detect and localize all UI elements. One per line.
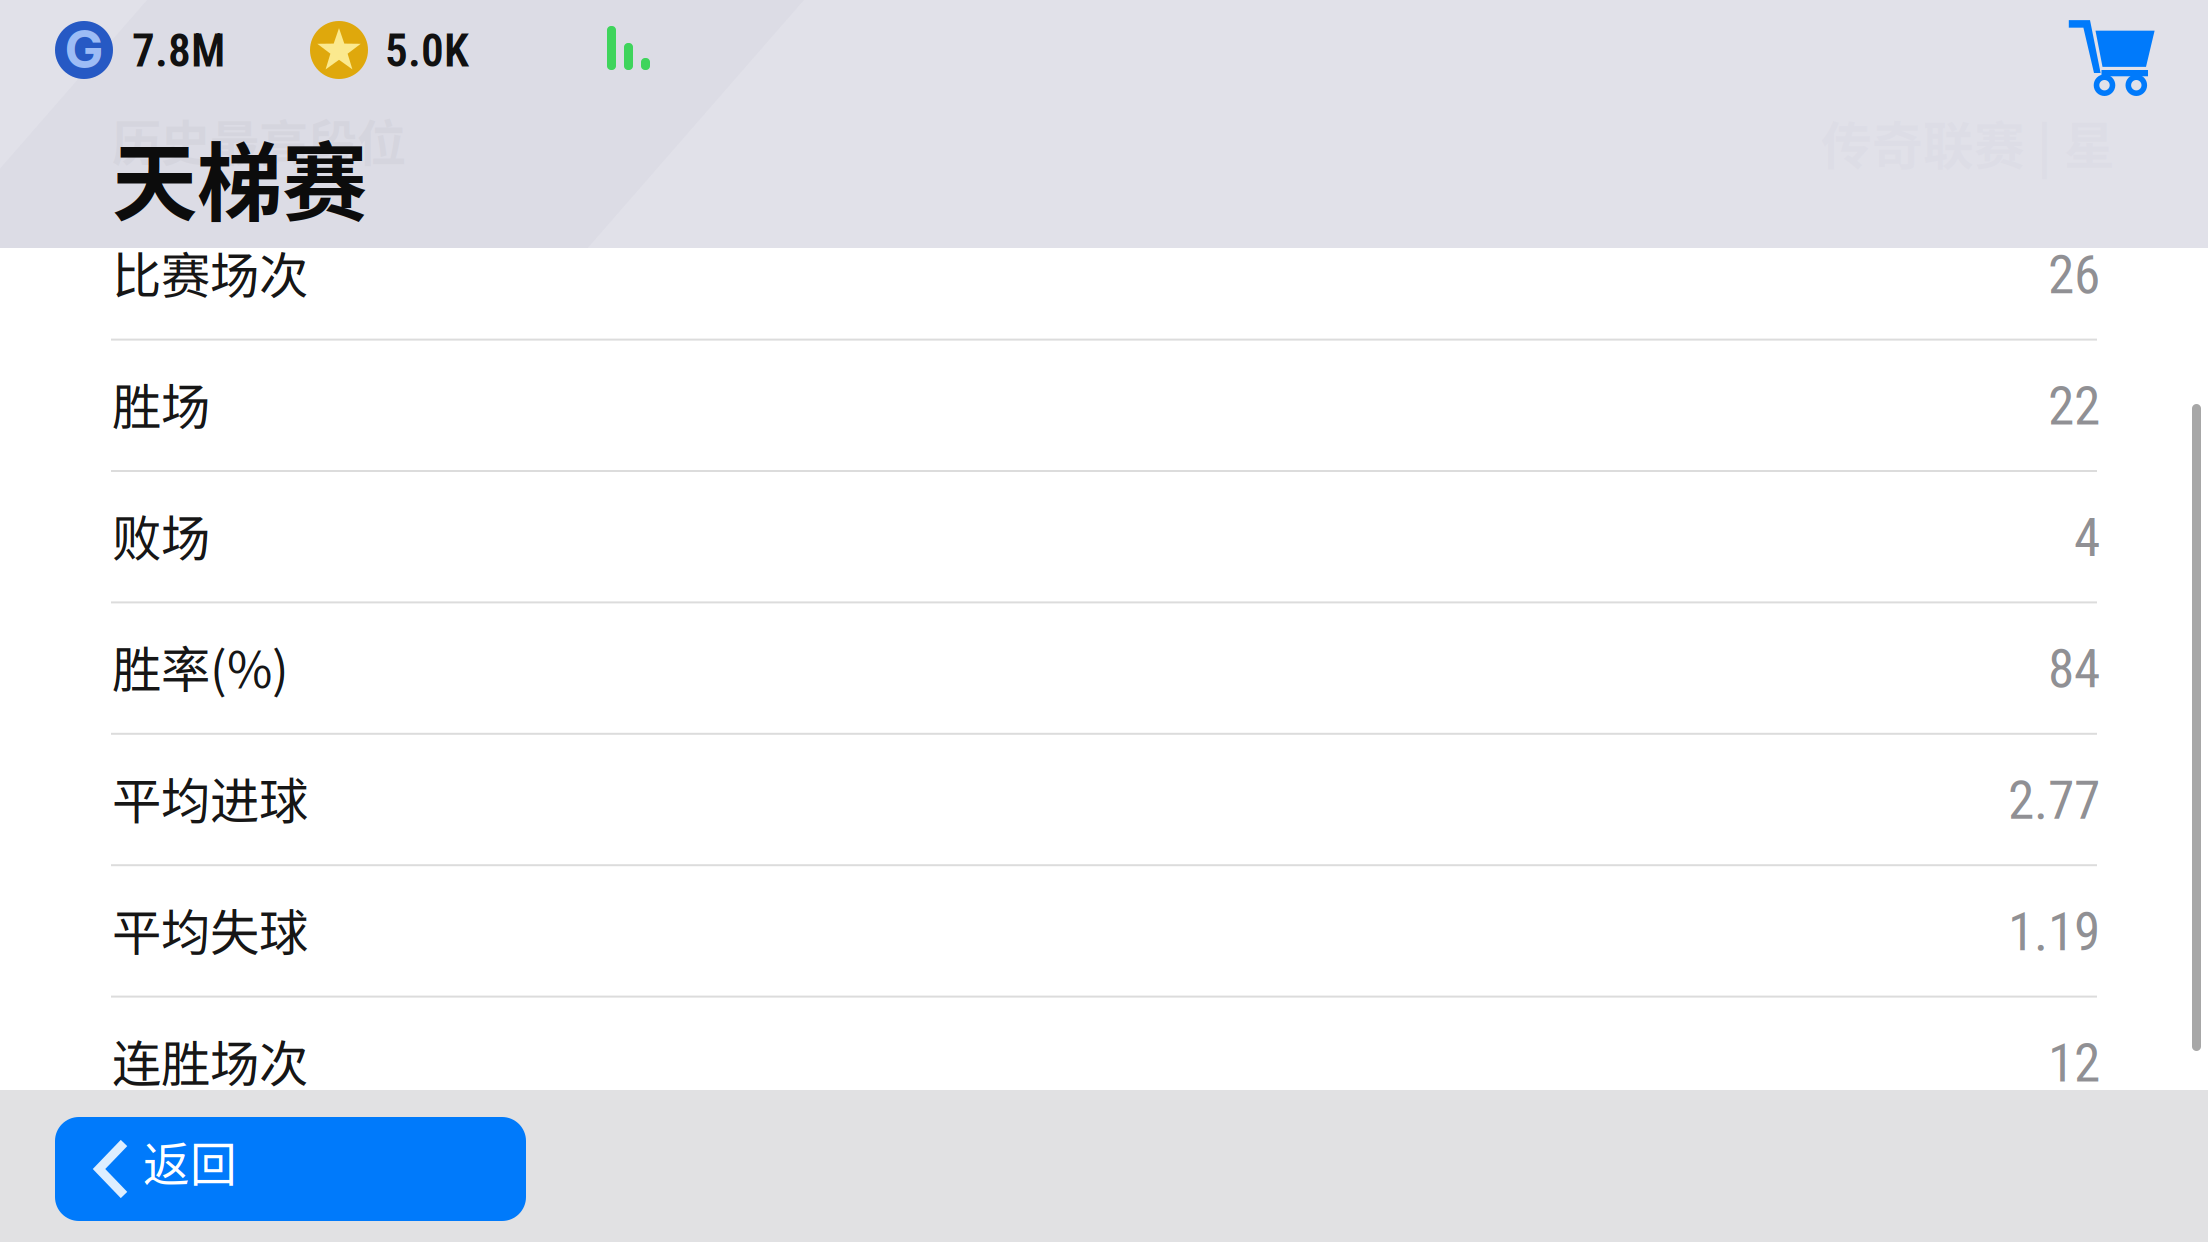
button[interactable]: 胜率(%) <box>111 603 2097 735</box>
staticText: 胜场 <box>112 368 210 439</box>
staticText: 22 <box>2048 375 2100 438</box>
button[interactable]: 平均进球 <box>111 735 2097 866</box>
staticText: G <box>64 17 103 80</box>
staticText: 平均进球 <box>112 762 308 833</box>
staticText: 胜率(%) <box>112 630 289 702</box>
staticText: 平均失球 <box>112 893 308 965</box>
button[interactable]: 5.0K <box>310 20 490 80</box>
button[interactable]: 连胜场次 <box>111 998 2097 1129</box>
staticText: 返回 <box>143 1127 237 1195</box>
button[interactable]: 胜场 <box>111 341 2097 472</box>
staticText: 连胜场次 <box>112 1025 308 1096</box>
staticText: 7.8M <box>132 24 225 77</box>
staticText: 天梯赛 <box>112 115 367 239</box>
staticText: 4 <box>2074 506 2100 569</box>
staticText: 12 <box>2048 1032 2100 1095</box>
staticText: 26 <box>2048 244 2100 306</box>
button[interactable]: Shopping cart <box>2054 5 2170 111</box>
button[interactable]: 返回 <box>55 1117 526 1221</box>
staticText: 5.0K <box>385 24 469 77</box>
staticText: 历史最高段位 <box>112 104 406 175</box>
button[interactable]: 比赛场次 <box>111 209 2097 341</box>
staticText: 1.19 <box>2008 901 2100 963</box>
button[interactable]: 败场 <box>111 472 2097 603</box>
button[interactable]: G <box>55 20 240 80</box>
staticText: 败场 <box>112 499 210 570</box>
staticText: 2.77 <box>2008 769 2100 832</box>
staticText: 比赛场次 <box>112 236 308 308</box>
staticText: 84 <box>2048 638 2100 700</box>
button[interactable]: 平均失球 <box>111 866 2097 998</box>
